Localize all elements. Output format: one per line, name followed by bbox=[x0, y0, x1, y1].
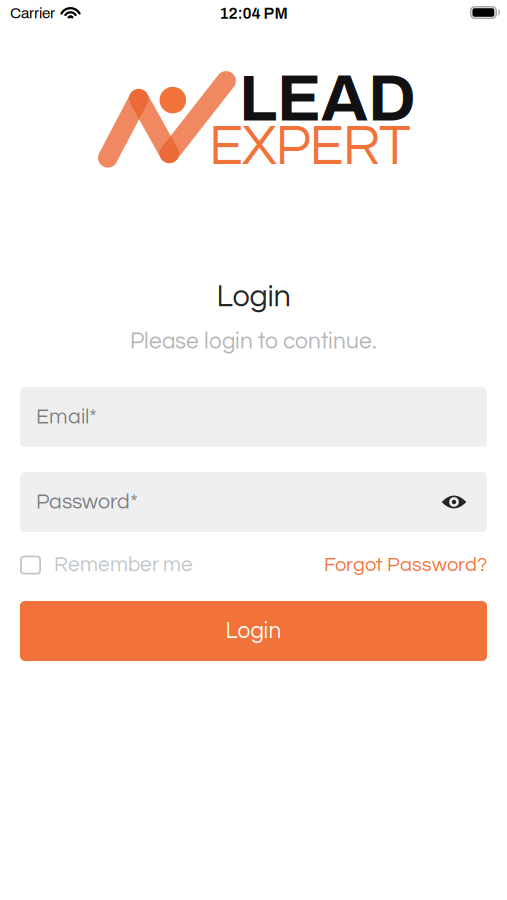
staticText: Email* bbox=[36, 406, 97, 428]
button[interactable]: Remember me bbox=[20, 554, 193, 576]
staticText: Forgot Password? bbox=[324, 555, 487, 575]
button[interactable]: Forgot Password? bbox=[324, 555, 487, 575]
button[interactable]: Login bbox=[20, 601, 487, 661]
staticText: Remember me bbox=[54, 554, 193, 576]
staticText: 12:04 PM bbox=[219, 5, 287, 22]
staticText: LEAD bbox=[239, 64, 416, 134]
staticText: Login bbox=[216, 281, 290, 313]
staticText: Please login to continue. bbox=[130, 330, 377, 353]
staticText: Login bbox=[225, 619, 281, 643]
staticText: EXPERT bbox=[209, 118, 411, 176]
staticText: Password* bbox=[36, 491, 138, 513]
button[interactable]: Show password bbox=[433, 478, 475, 526]
staticText: Carrier bbox=[10, 5, 55, 21]
